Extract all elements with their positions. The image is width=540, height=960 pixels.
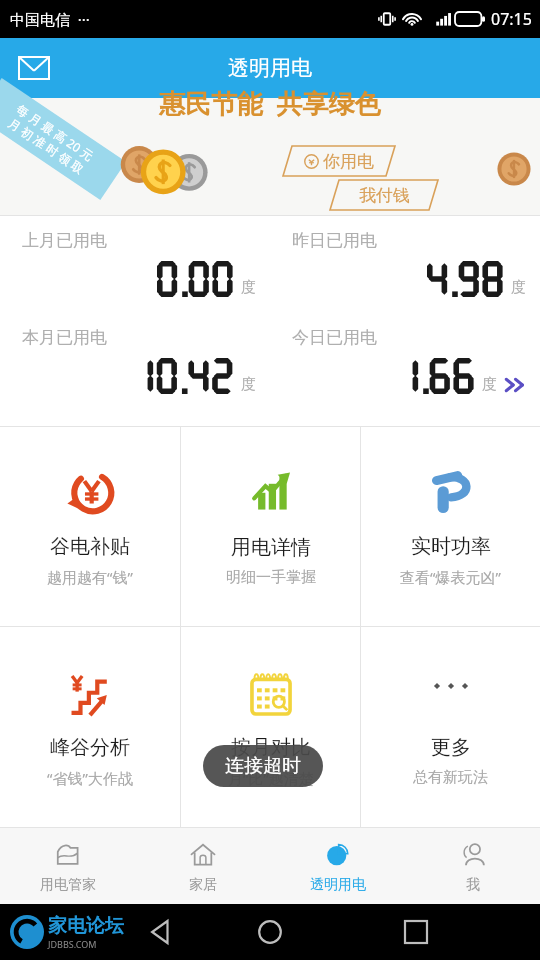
staticText: 你用电 [323,151,374,172]
staticText: 峰谷分析 [50,735,130,760]
staticText: 更多 [431,735,471,760]
staticText: 本月已用电 [22,327,107,348]
staticText: 07:15 [491,8,532,30]
staticText: 越用越有“钱” [47,567,133,587]
staticText: 我 [466,876,480,894]
staticText: 昨日已用电 [292,230,377,251]
button[interactable]: Home [246,908,294,956]
staticText: 月“比”越清楚 [228,768,314,788]
staticText: 度 [482,375,497,394]
staticText: 查看“爆表元凶” [400,567,501,587]
button[interactable]: 按月对比 [181,627,360,827]
staticText: 谷电补贴 [50,534,130,559]
staticText: 今日已用电 [292,327,377,348]
button[interactable]: 用电详情 [181,427,360,626]
button[interactable]: 我 [405,828,540,904]
staticText: 透明用电 [228,55,312,81]
staticText: 度 [511,278,526,297]
staticText: 连接超时 [225,754,301,778]
button[interactable]: 透明用电 [270,828,405,904]
staticText: 上月已用电 [22,230,107,251]
staticText: 度 [241,278,256,297]
button[interactable]: 用电管家 [0,828,135,904]
button[interactable]: 峰谷分析 [0,627,180,827]
staticText: 月 初 准 时 领 取 [6,114,87,177]
staticText: 按月对比 [231,735,311,760]
staticText: 实时功率 [411,534,491,559]
staticText: 总有新玩法 [413,768,488,787]
staticText: 透明用电 [310,876,366,894]
staticText: 惠民节能 共享绿色 [159,85,381,121]
button[interactable]: 家居 [135,828,270,904]
button[interactable]: Recents [392,908,440,956]
staticText: 用电管家 [40,876,96,894]
staticText: JDBBS.COM [48,938,97,950]
staticText: 家电论坛 [48,914,124,938]
staticText: 用电详情 [231,535,311,560]
staticText: 家居 [189,876,217,894]
staticText: 我付钱 [359,185,410,206]
button[interactable]: 谷电补贴 [0,427,180,626]
button[interactable]: 更多 [361,627,540,827]
staticText: 度 [241,375,256,394]
staticText: “省钱”大作战 [47,768,133,788]
button[interactable]: 实时功率 [361,427,540,626]
button[interactable]: Messages [12,46,56,90]
button[interactable]: Back [140,910,184,954]
staticText: 每 月 最 高 20 元 [14,101,97,164]
staticText: 中国电信 ··· [10,9,90,29]
staticText: 明细一手掌握 [226,568,316,587]
